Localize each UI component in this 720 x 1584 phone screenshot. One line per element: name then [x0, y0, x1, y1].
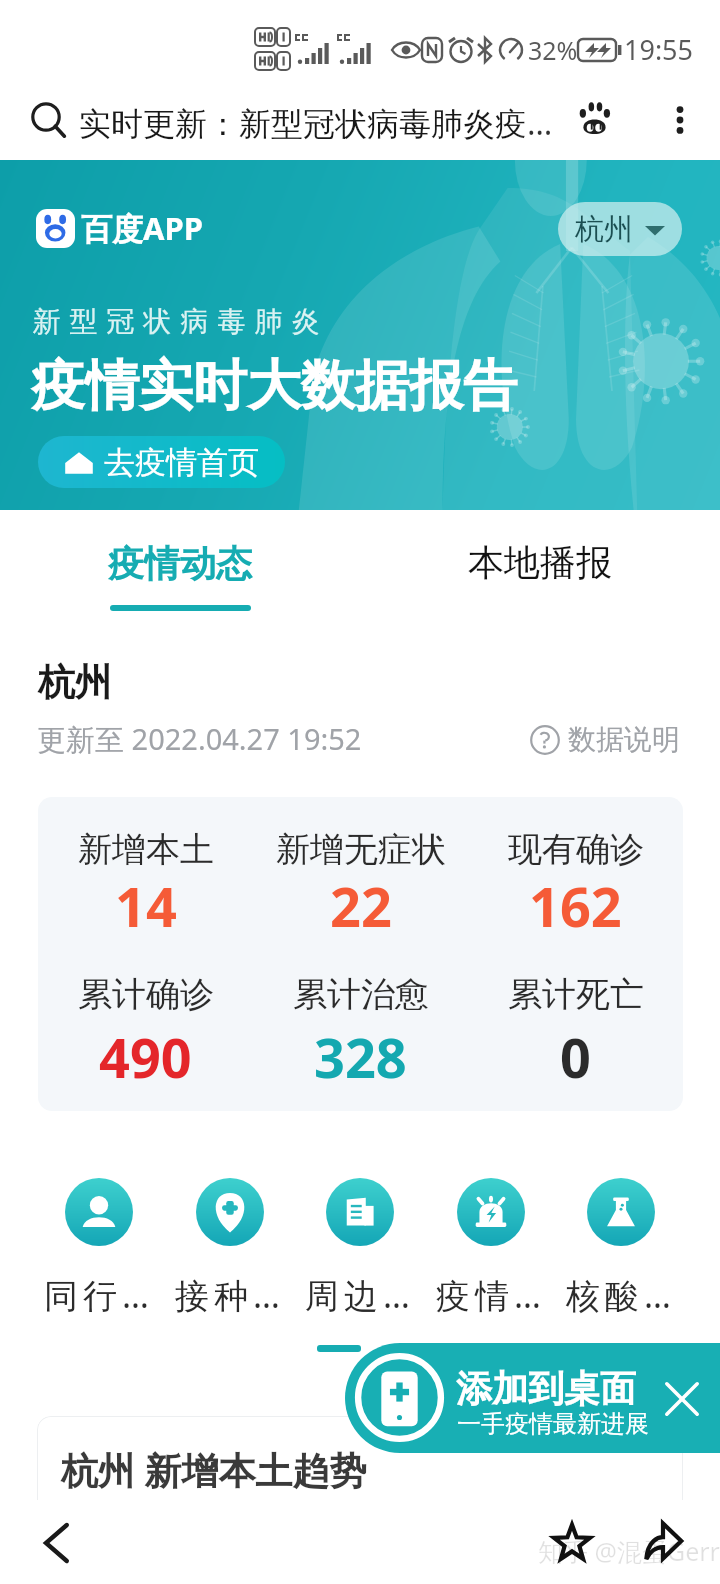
button[interactable]: 同行… — [37, 1178, 161, 1318]
staticText: 现有确诊 — [508, 828, 644, 871]
staticText: 杭州 — [38, 659, 112, 706]
staticText: 百度APP — [81, 207, 203, 249]
button[interactable]: Share — [644, 1522, 682, 1560]
button[interactable]: 周边… — [298, 1178, 422, 1318]
staticText: 更新至 2022.04.27 19:52 — [37, 719, 362, 759]
staticText: 数据说明 — [568, 722, 680, 757]
staticText: 同行… — [44, 1272, 154, 1318]
staticText: 本地播报 — [468, 540, 612, 585]
staticText: 累计死亡 — [508, 973, 644, 1016]
staticText: 实时更新：新型冠状病毒肺炎疫… — [79, 101, 553, 145]
staticText: 接种… — [175, 1272, 285, 1318]
button[interactable]: 添加到桌面 — [345, 1343, 720, 1453]
staticText: 周边… — [305, 1272, 415, 1318]
button[interactable]: Back — [38, 1518, 78, 1568]
button[interactable]: 杭州 — [558, 202, 682, 256]
staticText: 新增无症状 — [276, 828, 446, 871]
button[interactable]: 疫情动态 — [0, 495, 360, 615]
button[interactable]: 疫情… — [429, 1178, 553, 1318]
staticText: 累计治愈 — [293, 973, 429, 1016]
staticText: 疫情实时大数据报告 — [31, 352, 517, 420]
button[interactable]: Search — [30, 101, 70, 141]
staticText: 490 — [99, 1020, 192, 1094]
button[interactable]: Favorite — [552, 1522, 592, 1562]
button[interactable]: 本地播报 — [360, 495, 720, 615]
staticText: 一手疫情最新进展 — [457, 1409, 649, 1439]
staticText: 162 — [529, 869, 622, 943]
staticText: 添加到桌面 — [456, 1366, 636, 1411]
staticText: 杭州 新增本土趋势 — [61, 1444, 367, 1495]
staticText: 疫情… — [436, 1272, 546, 1318]
button[interactable]: 数据说明 — [530, 722, 680, 757]
staticText: 杭州 — [575, 211, 633, 248]
staticText: 0 — [560, 1020, 591, 1094]
button[interactable]: More options — [660, 100, 700, 140]
staticText: 去疫情首页 — [104, 443, 259, 482]
staticText: 328 — [314, 1020, 407, 1094]
button[interactable]: Baidu — [576, 100, 613, 137]
button[interactable]: 核酸… — [559, 1178, 683, 1318]
staticText: 22 — [330, 869, 392, 943]
button[interactable]: 去疫情首页 — [38, 436, 285, 488]
staticText: 19:55 — [624, 31, 694, 68]
staticText: 知乎 @混蛋Gerry — [538, 1534, 720, 1568]
staticText: 累计确诊 — [78, 973, 214, 1016]
button[interactable]: 接种… — [168, 1178, 292, 1318]
staticText: 新型冠状病毒肺炎 — [28, 304, 324, 339]
button[interactable]: 杭州 新增本土趋势 — [37, 1416, 683, 1516]
button[interactable]: Close — [663, 1380, 701, 1418]
staticText: 新增本土 — [78, 828, 214, 871]
staticText: 疫情动态 — [108, 541, 252, 586]
staticText: 14 — [115, 869, 177, 943]
staticText: 核酸… — [566, 1272, 676, 1318]
staticText: 32% — [528, 33, 578, 67]
